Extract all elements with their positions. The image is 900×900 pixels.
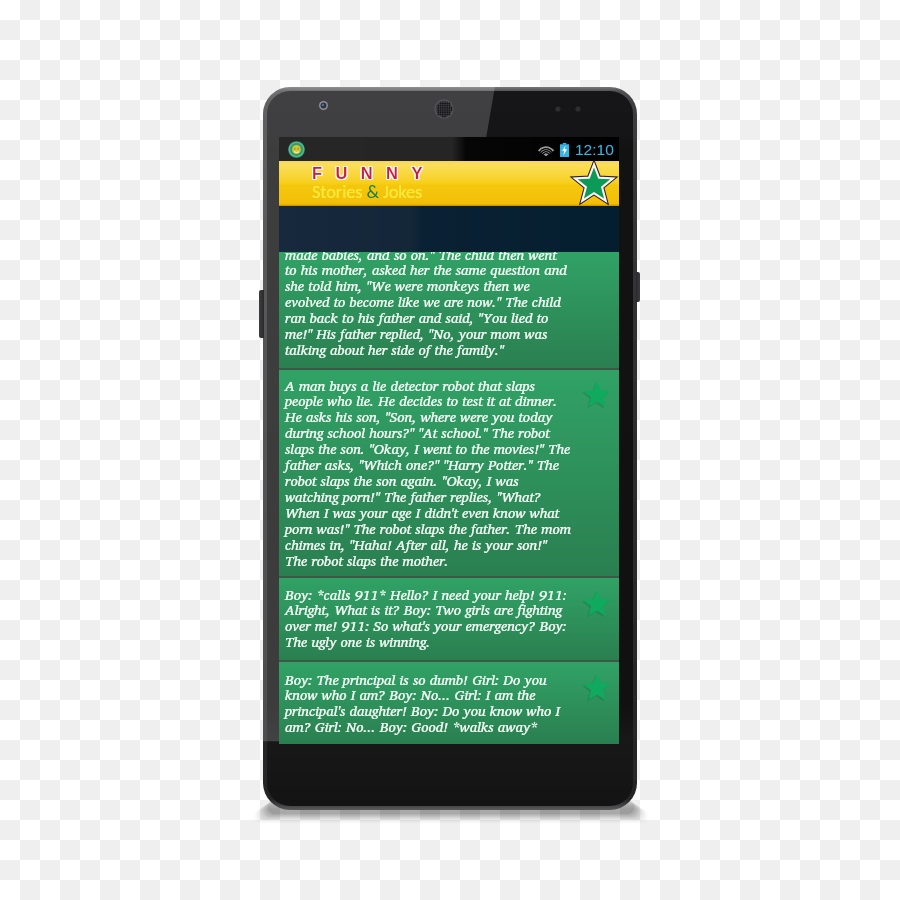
staticText: Boy: The principal is so dumb! Girl: Do … [285, 668, 571, 739]
staticText: made babies, and so on." The child then … [285, 252, 571, 359]
button[interactable]: Boy: *calls 911* Hello? I need your help… [279, 578, 619, 660]
staticText: 12:10 [575, 141, 614, 158]
staticText: FUNNY [311, 163, 435, 181]
staticText: FUNNY [311, 164, 435, 182]
button[interactable]: Favourites [573, 163, 615, 205]
staticText: FUNNY [311, 165, 435, 183]
staticText: FUNNY [313, 164, 437, 182]
button[interactable]: made babies, and so on." The child then … [279, 252, 619, 368]
staticText: FUNNY [312, 164, 436, 182]
staticText: Boy: *calls 911* Hello? I need your help… [285, 583, 571, 654]
staticText: FUNNY [312, 165, 436, 183]
staticText: FUNNY [313, 165, 437, 183]
staticText: Stories & Jokes [312, 180, 423, 202]
button[interactable]: Boy: The principal is so dumb! Girl: Do … [279, 662, 619, 744]
button[interactable]: A man buys a lie detector robot that sla… [279, 370, 619, 576]
staticText: FUNNY [312, 163, 436, 181]
staticText: A man buys a lie detector robot that sla… [285, 374, 571, 573]
staticText: FUNNY [313, 163, 437, 181]
